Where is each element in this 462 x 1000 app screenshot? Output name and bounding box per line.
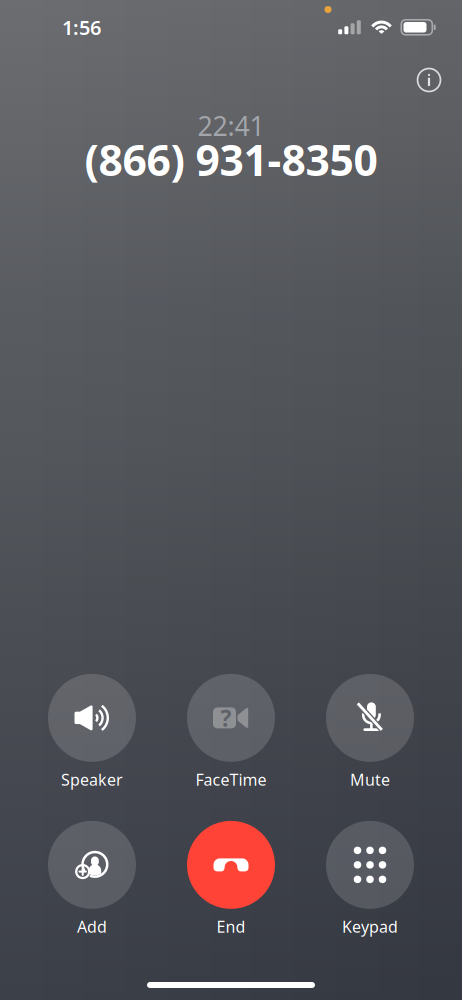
staticText: Speaker [61, 769, 123, 790]
staticText: End [216, 916, 245, 937]
staticText: (866) 931-8350 [84, 131, 377, 188]
staticText: ? [220, 703, 231, 733]
button[interactable]: End [161, 820, 300, 938]
staticText: Add [77, 916, 107, 937]
button[interactable]: Speaker [22, 673, 161, 791]
staticText: Mute [350, 769, 390, 790]
button[interactable]: Keypad [300, 820, 439, 938]
button[interactable]: Mute [300, 673, 439, 791]
button[interactable]: Call info [408, 59, 450, 101]
button[interactable]: Add [22, 820, 161, 938]
staticText: 1:56 [62, 14, 101, 41]
staticText: 22:41 [197, 108, 264, 143]
button[interactable]: ? [161, 673, 300, 791]
staticText: Keypad [342, 916, 398, 937]
staticText: FaceTime [195, 769, 266, 790]
